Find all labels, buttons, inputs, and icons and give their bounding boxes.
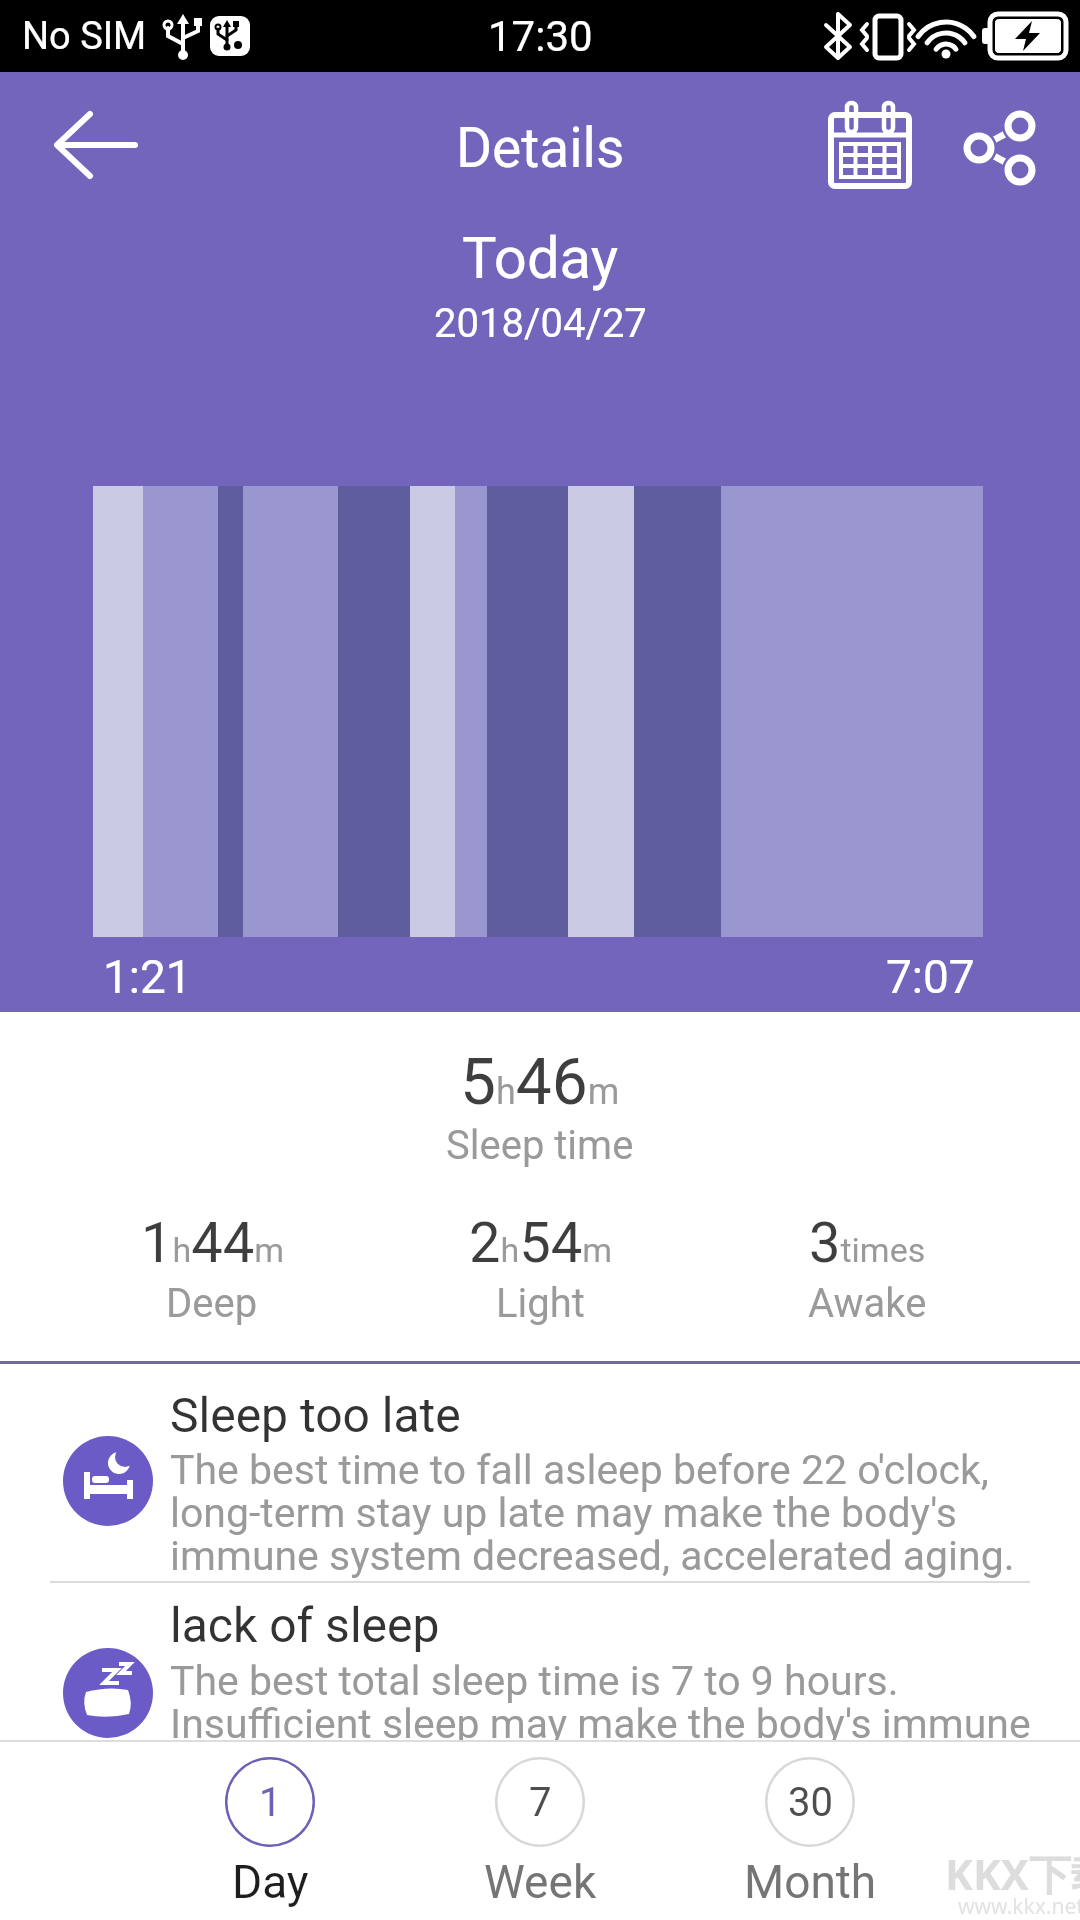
staticText: www.kkx.net [958, 1892, 1080, 1920]
staticText: 7 [529, 1779, 552, 1826]
staticText: KKX下载 [945, 1845, 1080, 1902]
staticText: 30 [788, 1779, 833, 1826]
staticText: 2018/04/27 [434, 300, 647, 347]
staticText: 1h44m [141, 1210, 284, 1276]
staticText: The best time to fall asleep before 22 o… [170, 1446, 1015, 1580]
staticText: 7:07 [886, 950, 975, 1004]
staticText: 1:21 [103, 950, 192, 1004]
staticText: Day [232, 1855, 309, 1909]
button[interactable] [820, 97, 920, 197]
staticText: 17:30 [488, 12, 593, 61]
staticText: Details [456, 116, 625, 180]
staticText: Week [484, 1855, 597, 1909]
staticText: Month [744, 1855, 877, 1909]
staticText: No SIM [22, 14, 147, 59]
staticText: lack of sleep [170, 1597, 440, 1653]
staticText: Awake [808, 1280, 927, 1327]
button[interactable]: 7 [450, 1757, 630, 1909]
staticText: The best total sleep time is 7 to 9 hour… [170, 1657, 1031, 1748]
button[interactable]: 1 [180, 1757, 360, 1909]
staticText: 1 [259, 1779, 282, 1826]
staticText: Sleep time [446, 1122, 634, 1169]
staticText: Sleep too late [170, 1387, 461, 1443]
staticText: 2h54m [469, 1210, 612, 1276]
staticText: 3times [809, 1210, 926, 1276]
button[interactable]: 30 [720, 1757, 900, 1909]
staticText: Light [496, 1280, 585, 1327]
staticText: 5h46m [460, 1045, 620, 1120]
button[interactable] [30, 102, 160, 192]
button[interactable] [950, 102, 1045, 192]
staticText: Deep [166, 1280, 258, 1327]
staticText: Today [462, 224, 619, 292]
